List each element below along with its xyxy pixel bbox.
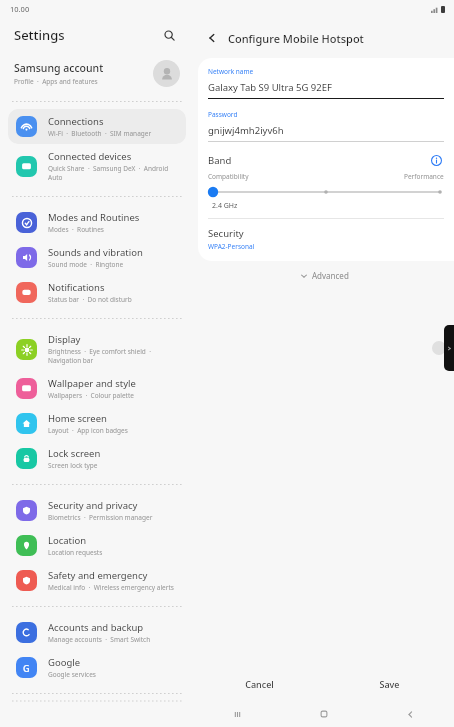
staticText: Display bbox=[48, 333, 81, 346]
staticText: Profile · Apps and features bbox=[14, 77, 98, 86]
staticText: Layout · App icon badges bbox=[48, 426, 128, 435]
staticText: Connections bbox=[48, 115, 104, 128]
button[interactable]: Connections bbox=[8, 109, 186, 144]
staticText: Save bbox=[379, 678, 400, 690]
staticText: Modes · Routines bbox=[48, 225, 104, 234]
staticText: Connected devices bbox=[48, 150, 132, 163]
button[interactable]: Display bbox=[8, 327, 186, 371]
button[interactable]: Search bbox=[158, 24, 180, 46]
staticText: Quick Share · Samsung DeX · Android Auto bbox=[48, 164, 178, 182]
staticText: Sound mode · Ringtone bbox=[48, 260, 124, 269]
button[interactable]: Security and privacy bbox=[8, 493, 186, 528]
staticText: WPA2-Personal bbox=[208, 242, 255, 251]
staticText: Modes and Routines bbox=[48, 211, 140, 224]
staticText: Location bbox=[48, 534, 87, 547]
button[interactable]: Notifications bbox=[8, 275, 186, 310]
staticText: gnijwj4mh2iyv6h bbox=[208, 124, 284, 137]
staticText: Samsung account bbox=[14, 61, 104, 75]
staticText: Band bbox=[208, 154, 232, 167]
button[interactable]: Edge panel bbox=[444, 325, 454, 371]
button[interactable]: Connected devices bbox=[8, 144, 186, 188]
staticText: Settings bbox=[14, 26, 65, 44]
button[interactable]: Advanced bbox=[194, 270, 454, 281]
staticText: Configure Mobile Hotspot bbox=[228, 31, 364, 46]
staticText: Network name bbox=[208, 67, 254, 76]
staticText: Home screen bbox=[48, 412, 107, 425]
button[interactable]: Location bbox=[8, 528, 186, 563]
button[interactable]: Sounds and vibration bbox=[8, 240, 186, 275]
staticText: 10.00 bbox=[10, 4, 30, 14]
button[interactable]: Save bbox=[324, 667, 454, 701]
staticText: Password bbox=[208, 110, 238, 119]
staticText: Security bbox=[208, 227, 244, 240]
staticText: Lock screen bbox=[48, 447, 101, 460]
button[interactable]: Cancel bbox=[194, 667, 324, 701]
staticText: Manage accounts · Smart Switch bbox=[48, 635, 151, 644]
staticText: Wallpapers · Colour palette bbox=[48, 391, 134, 400]
button[interactable]: G bbox=[8, 650, 186, 685]
button[interactable]: Home bbox=[280, 701, 367, 727]
button[interactable]: Back bbox=[200, 26, 224, 50]
staticText: Medical info · Wireless emergency alerts bbox=[48, 583, 174, 592]
staticText: Wallpaper and style bbox=[48, 377, 136, 390]
staticText: Brightness · Eye comfort shield · Naviga… bbox=[48, 347, 178, 365]
staticText: Screen lock type bbox=[48, 461, 98, 470]
staticText: Advanced bbox=[312, 270, 349, 281]
button[interactable]: Recents bbox=[194, 701, 280, 727]
button[interactable]: Home screen bbox=[8, 406, 186, 441]
staticText: Status bar · Do not disturb bbox=[48, 295, 132, 304]
button[interactable]: Band information bbox=[428, 152, 444, 168]
staticText: Location requests bbox=[48, 548, 103, 557]
staticText: Google services bbox=[48, 670, 96, 679]
button[interactable]: Security bbox=[208, 227, 444, 251]
staticText: Safety and emergency bbox=[48, 569, 148, 582]
button[interactable]: Lock screen bbox=[8, 441, 186, 476]
staticText: Wi-Fi · Bluetooth · SIM manager bbox=[48, 129, 152, 138]
button[interactable]: Wallpaper and style bbox=[8, 371, 186, 406]
staticText: Cancel bbox=[245, 678, 274, 690]
staticText: Security and privacy bbox=[48, 499, 138, 512]
staticText: G bbox=[23, 662, 30, 674]
staticText: Google bbox=[48, 656, 81, 669]
button[interactable]: Modes and Routines bbox=[8, 205, 186, 240]
staticText: Biometrics · Permission manager bbox=[48, 513, 153, 522]
staticText: 2.4 GHz bbox=[212, 201, 238, 211]
button[interactable]: Band slider bbox=[208, 185, 444, 199]
staticText: Notifications bbox=[48, 281, 105, 294]
staticText: Accounts and backup bbox=[48, 621, 144, 634]
staticText: Sounds and vibration bbox=[48, 246, 143, 259]
staticText: Compatibility bbox=[208, 172, 249, 181]
staticText: Galaxy Tab S9 Ultra 5G 92EF bbox=[208, 81, 332, 94]
button[interactable]: Back bbox=[367, 701, 454, 727]
button[interactable]: Samsung account bbox=[0, 52, 194, 94]
button[interactable]: Safety and emergency bbox=[8, 563, 186, 598]
staticText: Performance bbox=[404, 172, 444, 181]
button[interactable]: Accounts and backup bbox=[8, 615, 186, 650]
